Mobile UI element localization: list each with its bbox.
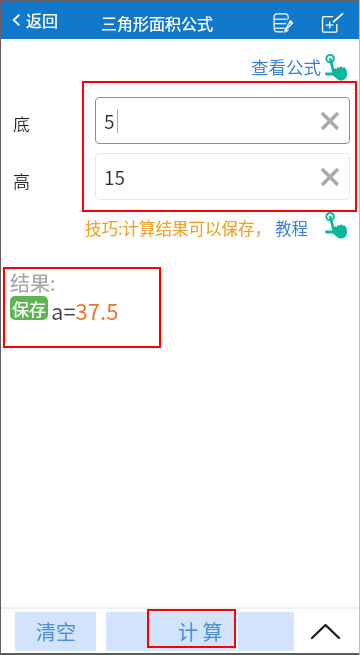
button[interactable]: 保存 xyxy=(10,296,48,320)
button[interactable]: 5 xyxy=(95,97,350,144)
button[interactable]: New note xyxy=(314,0,348,39)
button[interactable]: 清空 xyxy=(15,612,96,651)
button[interactable]: Notes xyxy=(264,0,298,39)
staticText: 保存 xyxy=(12,296,46,320)
button[interactable]: Collapse keyboard xyxy=(294,608,358,653)
staticText: 三角形面积公式 xyxy=(101,11,214,34)
button[interactable]: 返回 xyxy=(6,0,62,39)
staticText: 清空 xyxy=(36,617,76,646)
staticText: 技巧:计算结果可以保存， xyxy=(85,216,275,240)
staticText: 返回 xyxy=(26,8,59,31)
button[interactable]: 教程 xyxy=(275,216,308,240)
staticText: 底 xyxy=(13,111,30,136)
staticText: 15 xyxy=(104,163,126,191)
button[interactable]: 计 算 xyxy=(106,612,236,651)
staticText: 计 算 xyxy=(178,617,223,646)
staticText: 5 xyxy=(104,107,115,135)
staticText: 结果: xyxy=(10,268,56,297)
button[interactable]: 查看公式 xyxy=(251,54,321,79)
staticText: a=37.5 xyxy=(51,294,119,326)
staticText: 高 xyxy=(13,168,30,193)
button[interactable]: 15 xyxy=(95,153,350,200)
staticText: 查看公式 xyxy=(251,54,321,79)
